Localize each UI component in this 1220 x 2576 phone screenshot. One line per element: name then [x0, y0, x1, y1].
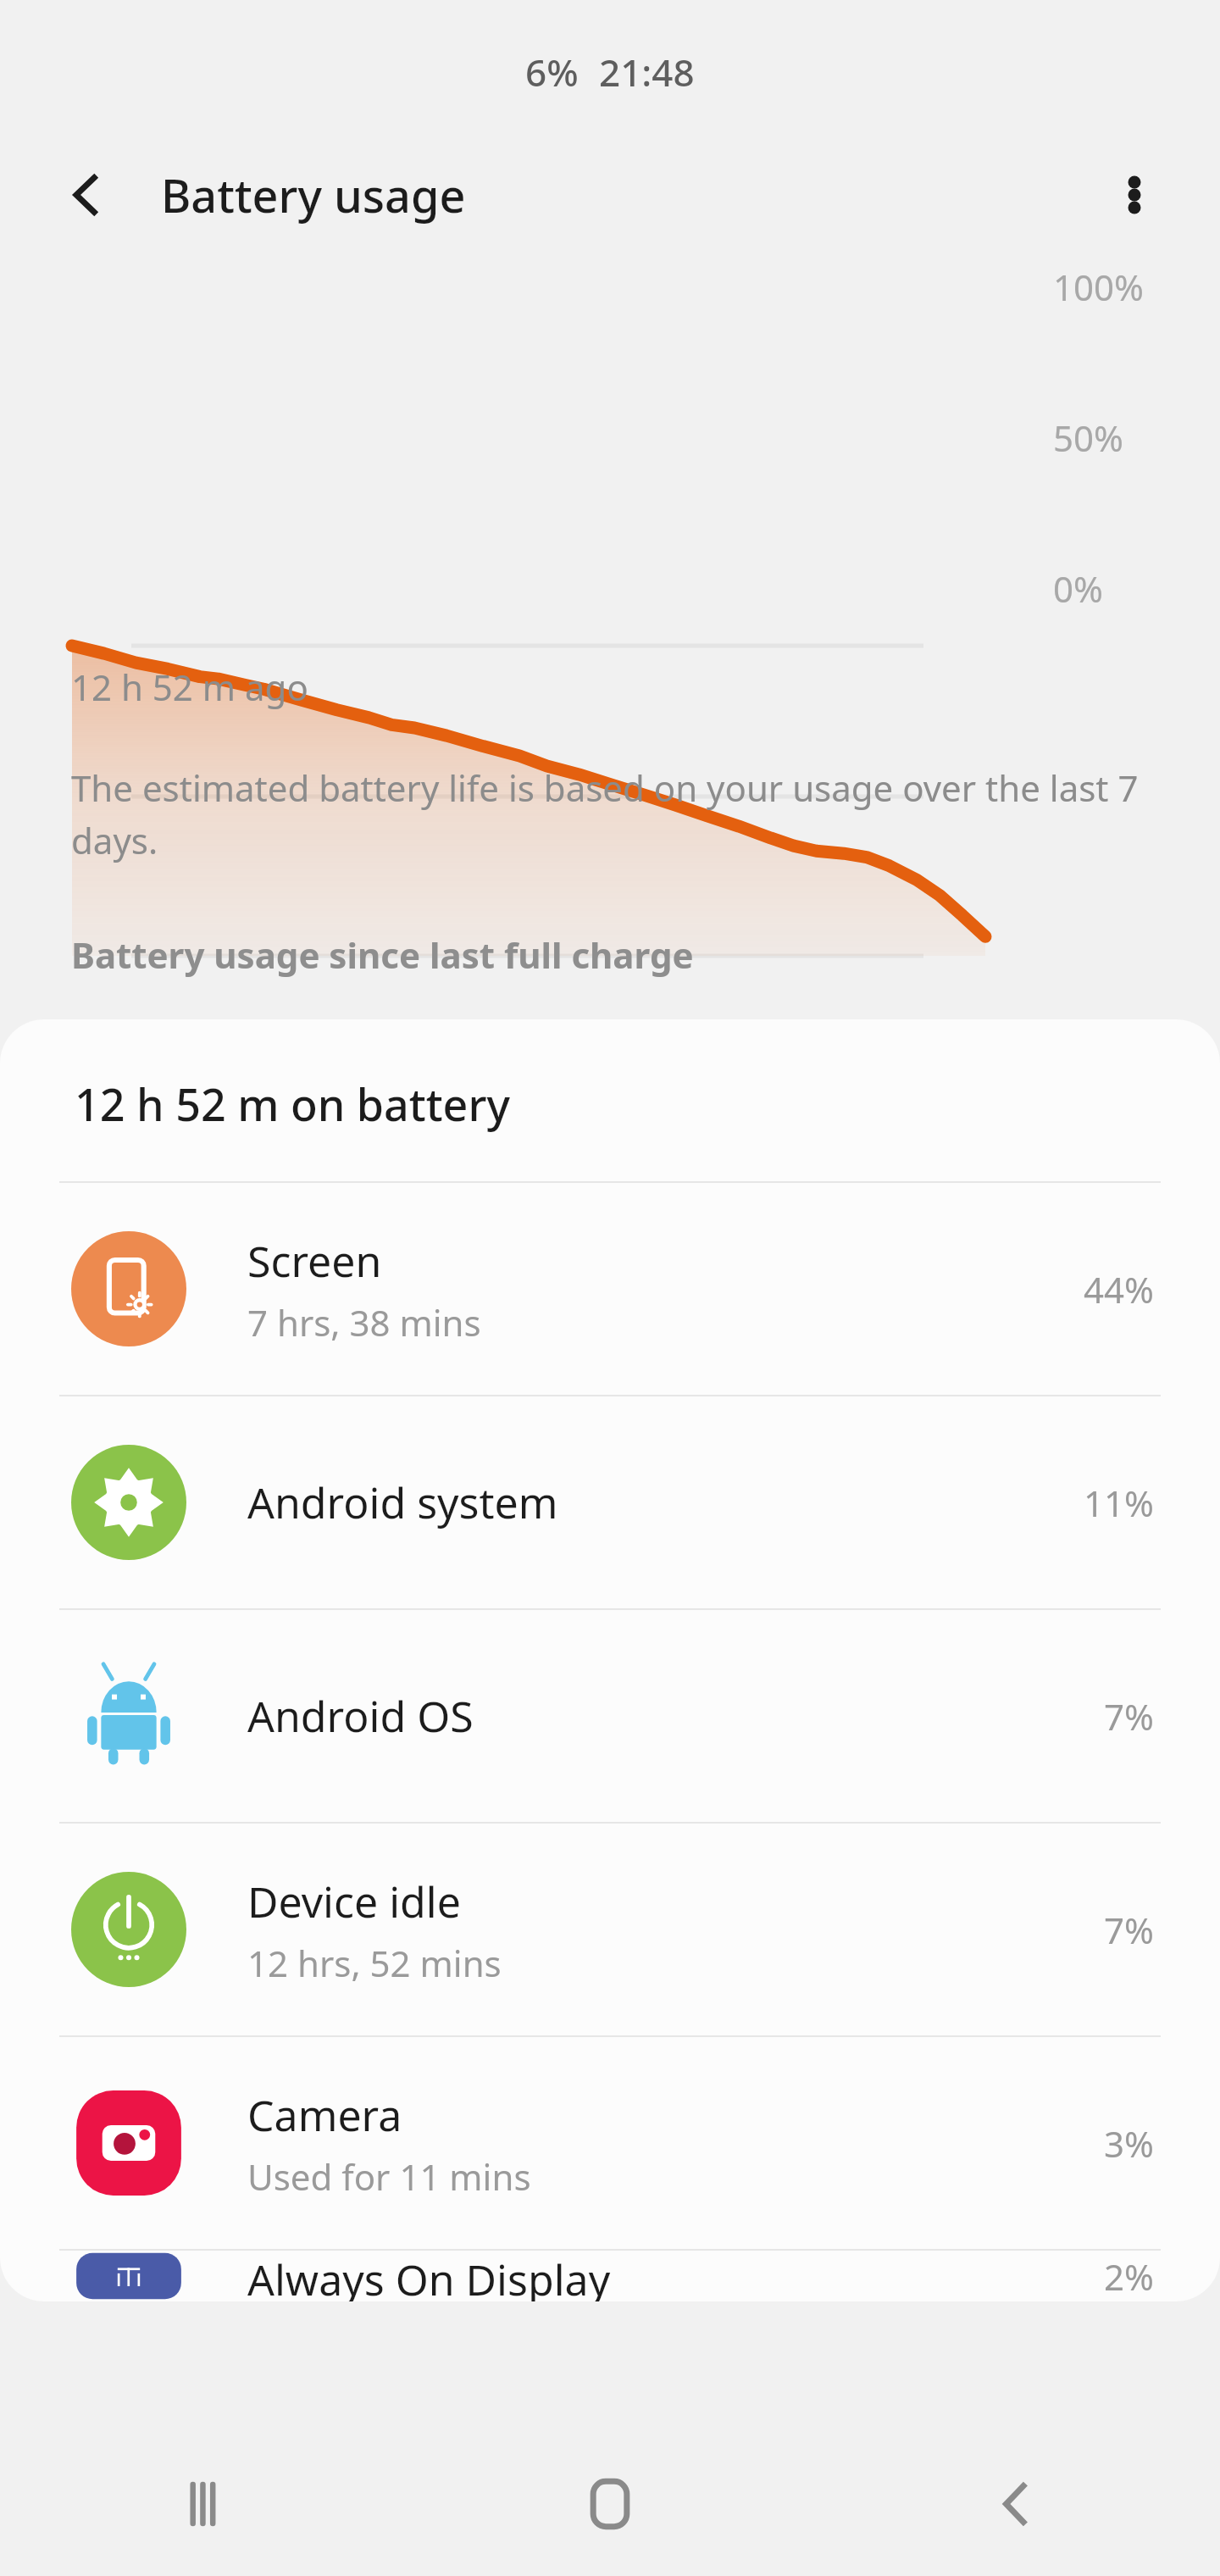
staticText: 7%	[1104, 1692, 1154, 1740]
button[interactable]: Camera	[0, 2037, 1220, 2249]
staticText: 11%	[1084, 1479, 1154, 1527]
staticText: 100%	[1053, 263, 1144, 311]
staticText: 7 hrs, 38 mins	[247, 1298, 481, 1346]
staticText: The estimated battery life is based on y…	[71, 763, 1145, 864]
button[interactable]: More options	[1096, 157, 1173, 233]
staticText: 12 hrs, 52 mins	[247, 1939, 502, 1987]
button[interactable]: Back	[813, 2432, 1220, 2576]
staticText: Camera	[247, 2086, 402, 2144]
staticText: Android system	[247, 1474, 558, 1531]
staticText: 2%	[1104, 2252, 1154, 2301]
staticText: 44%	[1084, 1265, 1154, 1313]
button[interactable]: Home	[407, 2432, 813, 2576]
staticText: Device idle	[247, 1873, 461, 1930]
button[interactable]: Back	[53, 161, 120, 229]
button[interactable]: Android OS	[0, 1610, 1220, 1822]
button[interactable]: Device idle	[0, 1824, 1220, 2035]
staticText: 6%	[525, 47, 579, 97]
staticText: Battery usage since last full charge	[71, 930, 694, 979]
staticText: 3%	[1104, 2119, 1154, 2168]
staticText: Used for 11 mins	[247, 2152, 531, 2201]
staticText: 21:48	[599, 47, 695, 97]
button[interactable]: Android system	[0, 1396, 1220, 1608]
staticText: 12 h 52 m ago	[71, 663, 308, 711]
staticText: 0%	[1053, 564, 1103, 613]
staticText: Android OS	[247, 1687, 474, 1745]
staticText: 50%	[1053, 414, 1123, 462]
button[interactable]: Recent apps	[0, 2432, 407, 2576]
staticText: 7%	[1104, 1906, 1154, 1954]
staticText: Screen	[247, 1232, 382, 1290]
button[interactable]: Always On Display	[0, 2251, 1220, 2301]
button[interactable]: Screen	[0, 1183, 1220, 1395]
staticText: 12 h 52 m on battery	[75, 1074, 510, 1134]
staticText: Always On Display	[247, 2251, 611, 2301]
staticText: Battery usage	[161, 164, 466, 226]
